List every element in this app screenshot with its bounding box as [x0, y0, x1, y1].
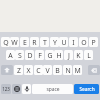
staticText: T — [43, 38, 47, 47]
button[interactable]: L — [84, 50, 93, 60]
button[interactable]: E — [20, 37, 29, 47]
staticText: G — [47, 51, 53, 60]
staticText: E — [23, 38, 27, 47]
button[interactable]: D — [25, 50, 34, 60]
staticText: Z — [17, 66, 21, 75]
button[interactable]: 123 — [1, 84, 11, 94]
staticText: R — [32, 38, 37, 47]
button[interactable]: P — [89, 37, 98, 47]
button[interactable]: F — [35, 50, 44, 60]
staticText: A — [8, 51, 13, 60]
button[interactable]: Backspace — [88, 65, 100, 75]
staticText: space — [46, 86, 60, 93]
staticText: H — [56, 51, 62, 60]
button[interactable]: Shift — [1, 65, 13, 75]
staticText: Search — [79, 86, 95, 93]
button[interactable]: I — [69, 37, 78, 47]
button[interactable]: Q — [1, 37, 10, 47]
button[interactable]: R — [30, 37, 39, 47]
button[interactable]: O — [79, 37, 88, 47]
staticText: K — [76, 51, 81, 60]
staticText: Y — [53, 38, 57, 47]
staticText: W — [11, 38, 18, 47]
button[interactable]: A — [6, 50, 15, 60]
button[interactable]: W — [10, 37, 19, 47]
button[interactable]: C — [34, 65, 43, 75]
button[interactable]: space — [32, 84, 73, 94]
staticText: I — [72, 38, 75, 47]
button[interactable]: Search — [74, 84, 99, 94]
button[interactable]: Switch keyboard — [12, 84, 21, 94]
staticText: Q — [3, 38, 9, 47]
button[interactable]: N — [63, 65, 72, 75]
button[interactable]: B — [53, 65, 62, 75]
staticText: P — [91, 38, 96, 47]
staticText: U — [61, 38, 67, 47]
staticText: L — [87, 51, 91, 60]
button[interactable]: S — [15, 50, 24, 60]
staticText: 123 — [2, 86, 10, 92]
staticText: M — [74, 66, 81, 75]
button[interactable]: J — [64, 50, 73, 60]
staticText: O — [81, 38, 87, 47]
button[interactable]: V — [43, 65, 52, 75]
staticText: F — [38, 51, 42, 60]
staticText: N — [65, 66, 71, 75]
staticText: J — [68, 51, 70, 60]
button[interactable]: Y — [50, 37, 59, 47]
staticText: C — [36, 66, 41, 75]
button[interactable]: Z — [14, 65, 23, 75]
button[interactable]: H — [54, 50, 63, 60]
staticText: B — [55, 66, 60, 75]
staticText: D — [27, 51, 33, 60]
button[interactable]: X — [24, 65, 33, 75]
staticText: X — [26, 66, 31, 75]
button[interactable]: T — [40, 37, 49, 47]
button[interactable]: G — [45, 50, 54, 60]
staticText: V — [45, 66, 50, 75]
button[interactable]: Voice input — [22, 84, 31, 94]
staticText: S — [18, 51, 22, 60]
button[interactable]: U — [59, 37, 68, 47]
button[interactable]: M — [73, 65, 82, 75]
button[interactable]: K — [74, 50, 83, 60]
